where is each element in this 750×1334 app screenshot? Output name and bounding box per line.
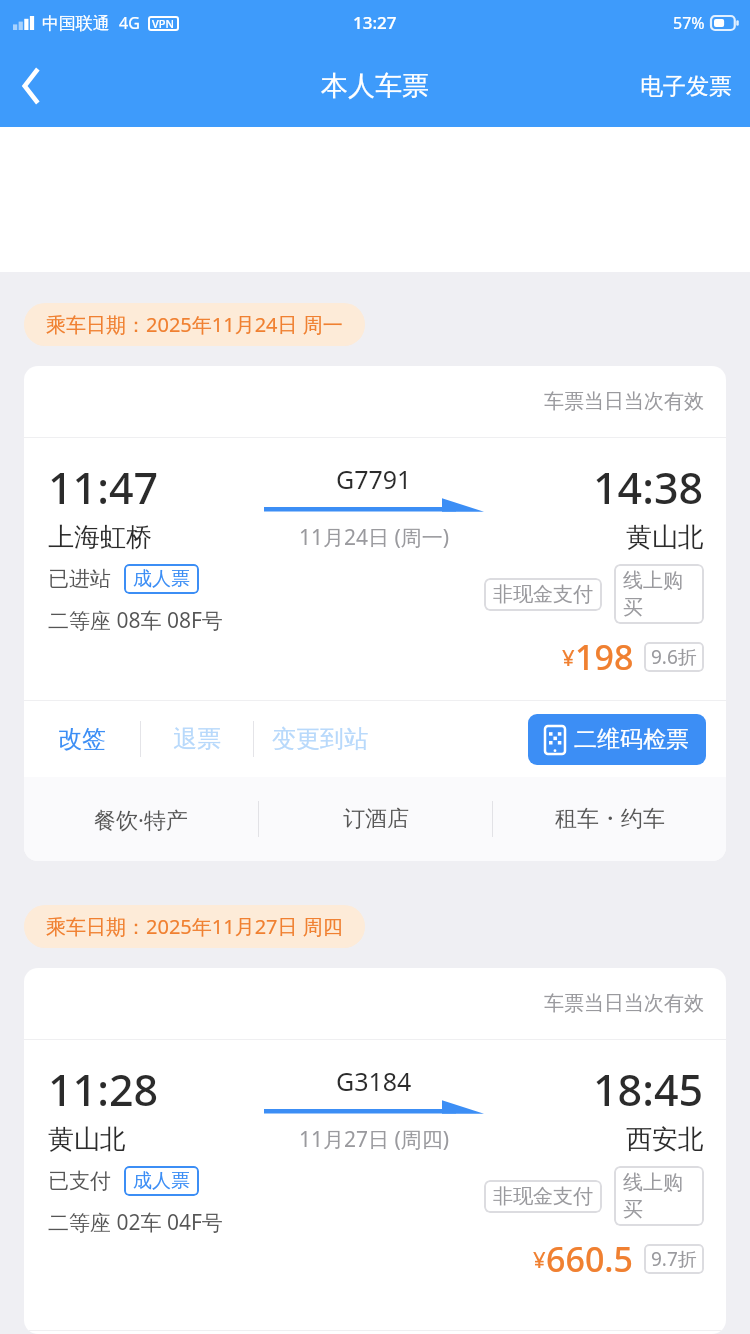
button[interactable]: 车票当日当次有效 — [24, 366, 726, 861]
staticText: 西安北 — [626, 1123, 704, 1156]
staticText: 已进站 — [48, 566, 111, 592]
staticText: 14:38 — [593, 458, 704, 517]
button[interactable]: 变更到站 — [254, 712, 386, 766]
staticText: VPN — [152, 16, 175, 31]
staticText: 电子发票 — [640, 72, 732, 101]
staticText: 9.6折 — [651, 644, 697, 670]
button[interactable]: 车票当日当次有效 — [24, 968, 726, 1334]
staticText: 中国联通 — [42, 13, 110, 34]
staticText: 上海虹桥 — [48, 521, 152, 554]
staticText: 660.5 — [546, 1236, 634, 1282]
button[interactable]: 二维码检票 — [528, 714, 706, 765]
staticText: 黄山北 — [626, 521, 704, 554]
staticText: 乘车日期：2025年11月27日 周四 — [46, 913, 343, 940]
staticText: 非现金支付 — [493, 1184, 593, 1209]
staticText: 11月24日 (周一) — [299, 523, 450, 552]
staticText: 订酒店 — [343, 805, 409, 833]
staticText: G7791 — [336, 462, 412, 496]
button[interactable]: 退票 — [141, 712, 253, 766]
staticText: 11:28 — [48, 1060, 159, 1119]
button[interactable]: 改签 — [24, 712, 140, 766]
staticText: 乘车日期：2025年11月24日 周一 — [46, 311, 343, 338]
staticText: 车票当日当次有效 — [544, 991, 704, 1016]
staticText: 线上购买 — [623, 568, 695, 620]
staticText: 4G — [119, 12, 140, 34]
staticText: 黄山北 — [48, 1123, 126, 1156]
button[interactable]: 乘车日期：2025年11月24日 周一 — [24, 303, 365, 346]
staticText: 18:45 — [593, 1060, 704, 1119]
staticText: 退票 — [173, 724, 221, 754]
staticText: 成人票 — [133, 1169, 190, 1193]
staticText: 成人票 — [133, 567, 190, 591]
staticText: 57% — [673, 12, 705, 34]
staticText: 二等座 02车 04F号 — [48, 1208, 223, 1237]
staticText: 198 — [575, 634, 634, 680]
staticText: 线上购买 — [623, 1170, 695, 1222]
staticText: 本人车票 — [321, 69, 429, 103]
staticText: 车票当日当次有效 — [544, 389, 704, 414]
button[interactable]: 餐饮·特产 — [24, 786, 258, 852]
staticText: 9.7折 — [651, 1246, 697, 1272]
staticText: G3184 — [336, 1064, 412, 1098]
staticText: 已支付 — [48, 1168, 111, 1194]
button[interactable]: 订酒店 — [259, 787, 492, 851]
staticText: 非现金支付 — [493, 582, 593, 607]
button[interactable]: 租车・约车 — [493, 787, 726, 851]
staticText: ¥ — [562, 642, 575, 672]
staticText: 二维码检票 — [574, 725, 689, 754]
staticText: 13:27 — [353, 11, 397, 34]
button[interactable]: 电子发票 — [622, 62, 750, 111]
button[interactable]: 返回 — [0, 53, 66, 119]
staticText: 二等座 08车 08F号 — [48, 606, 223, 635]
staticText: 变更到站 — [272, 724, 368, 754]
staticText: 改签 — [58, 724, 106, 754]
staticText: ¥ — [533, 1244, 546, 1274]
staticText: 租车・约车 — [555, 805, 665, 833]
staticText: 11:47 — [48, 458, 159, 517]
staticText: 11月27日 (周四) — [299, 1125, 450, 1154]
staticText: 餐饮·特产 — [94, 804, 188, 834]
button[interactable]: 乘车日期：2025年11月27日 周四 — [24, 905, 365, 948]
